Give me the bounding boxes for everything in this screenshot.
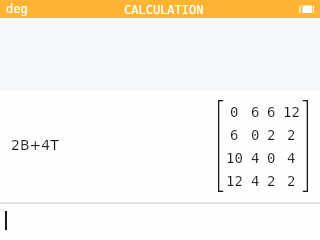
staticText: deg (6, 2, 28, 16)
staticText: 4 (287, 150, 296, 166)
staticText: 2 (287, 127, 296, 143)
button[interactable]: 2B+4T (0, 92, 320, 200)
staticText: 0 (267, 150, 275, 166)
staticText: 6 (251, 104, 259, 120)
staticText: 2 (267, 173, 275, 189)
staticText: 0 (251, 127, 259, 143)
button[interactable]: deg (0, 0, 34, 18)
staticText: 4 (251, 173, 259, 189)
staticText: 2 (267, 127, 275, 143)
staticText: 6 (230, 127, 239, 143)
button[interactable]: Expression input (0, 204, 320, 240)
staticText: 2B+4T (11, 137, 59, 153)
staticText: 6 (267, 104, 275, 120)
staticText: 4 (251, 150, 259, 166)
staticText: 2 (287, 173, 296, 189)
staticText: 0 (230, 104, 239, 120)
staticText: CALCULATION (124, 3, 204, 17)
staticText: 10 (226, 150, 243, 166)
staticText: 12 (226, 173, 243, 189)
staticText: 12 (283, 104, 300, 120)
button[interactable]: Battery (299, 5, 315, 14)
